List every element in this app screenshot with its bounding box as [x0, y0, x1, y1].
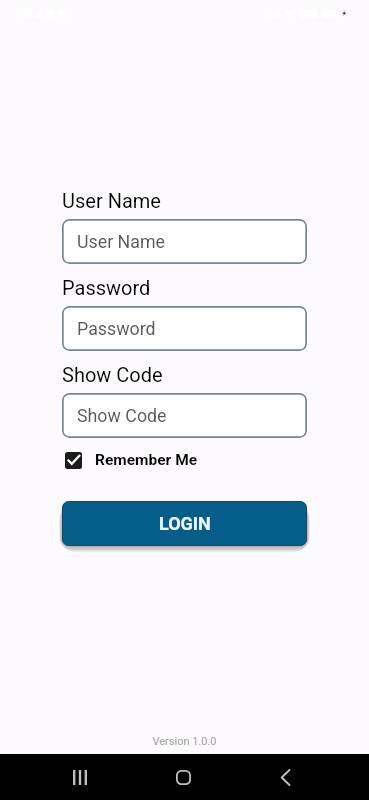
- staticText: User Name: [62, 189, 161, 212]
- button[interactable]: LOGIN: [62, 501, 307, 546]
- button[interactable]: Recent apps: [60, 757, 100, 797]
- staticText: Password: [77, 318, 156, 339]
- staticText: Version 1.0.0: [0, 735, 369, 748]
- button[interactable]: Back: [266, 757, 306, 797]
- staticText: Remember Me: [95, 451, 198, 469]
- button[interactable]: Home: [163, 757, 203, 797]
- staticText: Show Code: [77, 405, 167, 426]
- staticText: Password: [62, 276, 151, 299]
- staticText: Show Code: [62, 363, 163, 386]
- staticText: User Name: [77, 231, 166, 252]
- button[interactable]: Password: [62, 306, 307, 351]
- button[interactable]: User Name: [62, 219, 307, 264]
- staticText: LOGIN: [159, 513, 211, 534]
- button[interactable]: Remember Me: [62, 451, 198, 469]
- button[interactable]: Show Code: [62, 393, 307, 438]
